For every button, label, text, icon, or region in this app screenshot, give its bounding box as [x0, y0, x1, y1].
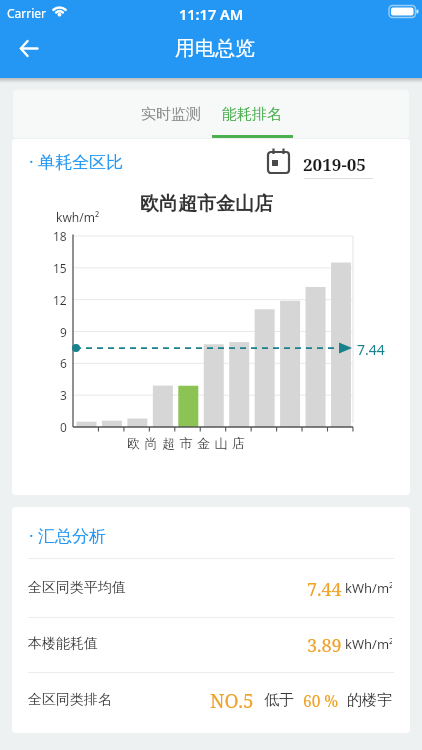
button[interactable]	[12, 559, 410, 617]
staticText: 9	[60, 324, 67, 340]
staticText: 欧尚超市金山店	[140, 192, 273, 213]
staticText: 2019-05	[303, 153, 366, 176]
staticText: 全区同类排名	[28, 691, 112, 709]
staticText: 6	[60, 355, 67, 371]
button[interactable]: 能耗排名	[209, 90, 295, 138]
staticText: 15	[53, 260, 67, 276]
staticText: · 汇总分析	[29, 524, 106, 544]
button[interactable]	[12, 618, 410, 672]
staticText: · 单耗全区比	[29, 150, 123, 171]
staticText: Carrier	[7, 5, 47, 21]
staticText: 欧尚超市金山店	[127, 435, 250, 451]
staticText: 实时监测	[141, 105, 201, 124]
staticText: 全区同类平均值	[28, 579, 126, 597]
staticText: 0	[60, 419, 67, 435]
staticText: kwh/m²	[56, 209, 100, 225]
staticText: 3	[60, 387, 67, 403]
staticText: 18	[53, 228, 67, 244]
staticText: 的楼宇	[347, 691, 392, 710]
staticText: 7.44	[307, 577, 342, 598]
staticText: NO.5	[210, 688, 254, 711]
staticText: 60 %	[303, 690, 339, 710]
staticText: 7.44	[357, 340, 385, 357]
button[interactable]: 实时监测	[128, 90, 214, 138]
button[interactable]	[9, 28, 49, 68]
button[interactable]	[12, 673, 410, 733]
staticText: 能耗排名	[222, 105, 282, 124]
staticText: 3.89	[307, 633, 342, 654]
staticText: kWh/m²	[345, 579, 392, 596]
staticText: 11:17 AM	[179, 4, 244, 22]
staticText: 用电总览	[175, 36, 255, 61]
staticText: kWh/m²	[345, 635, 392, 652]
staticText: 低于	[264, 691, 294, 710]
button[interactable]	[255, 142, 380, 184]
staticText: 本楼能耗值	[28, 635, 98, 653]
staticText: 12	[53, 292, 67, 308]
